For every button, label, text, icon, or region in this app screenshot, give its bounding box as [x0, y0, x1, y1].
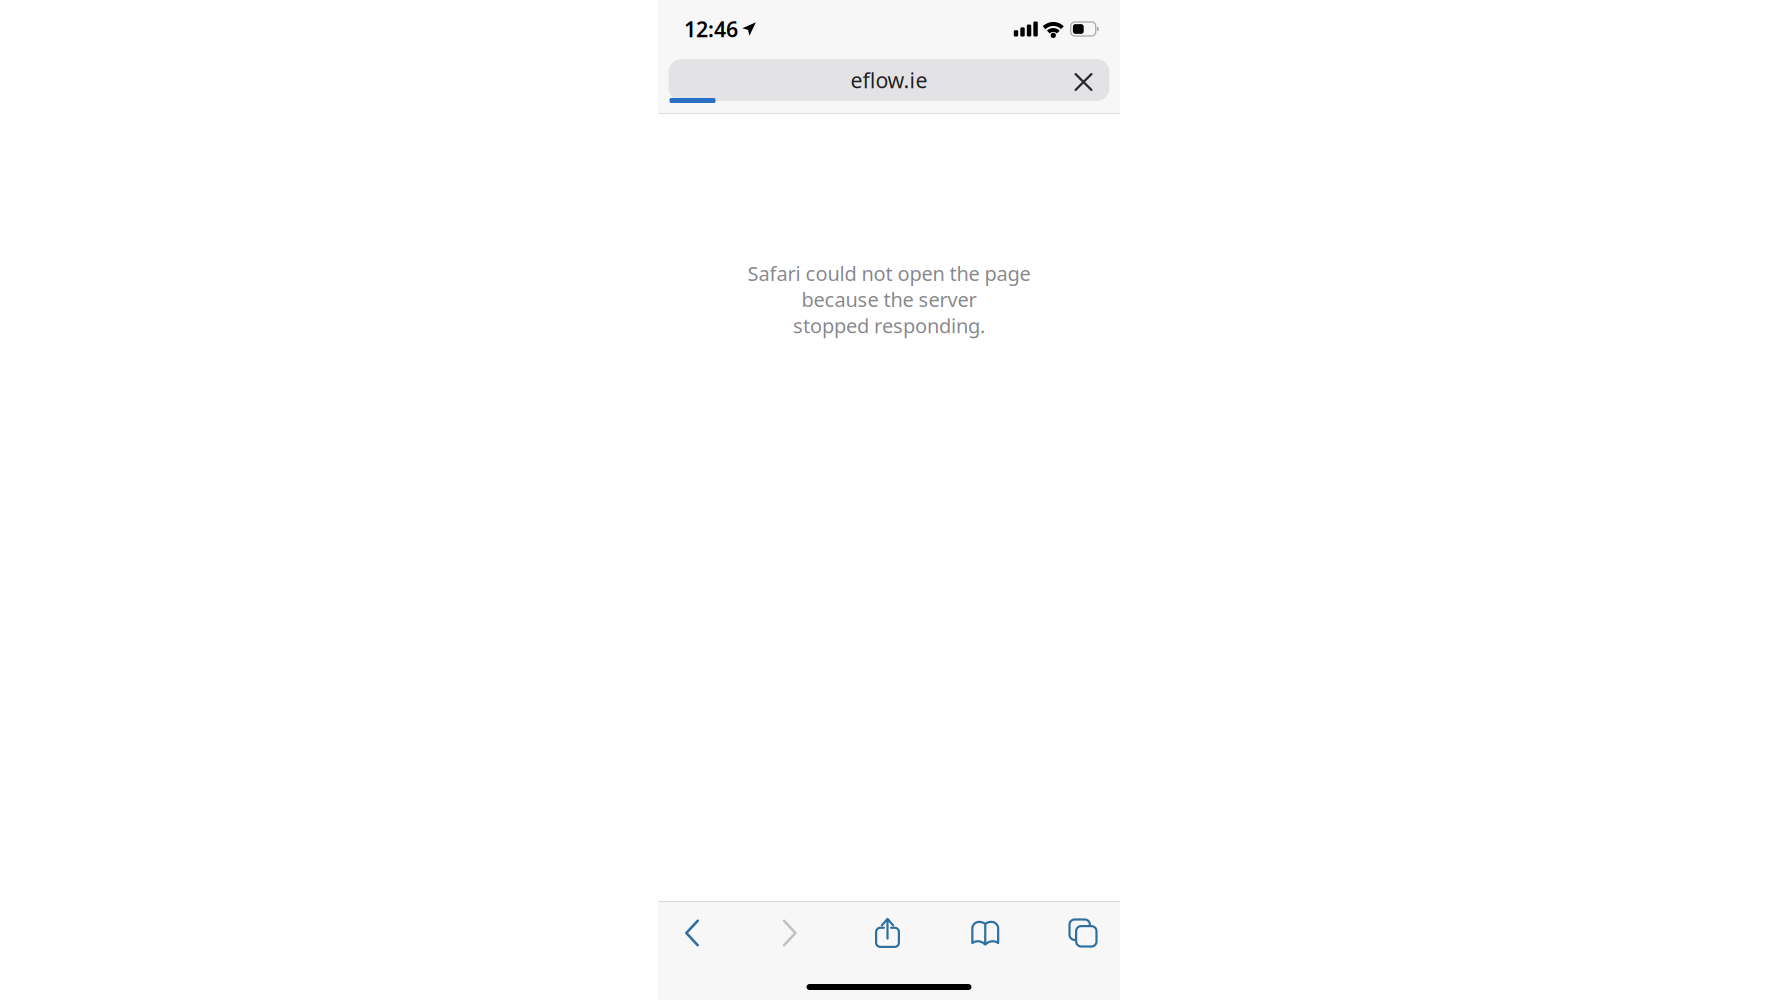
button[interactable]: Share	[860, 907, 914, 959]
button[interactable]: Forward	[763, 907, 817, 959]
staticText: because the server	[801, 286, 976, 313]
staticText: Safari could not open the page	[747, 260, 1030, 287]
staticText: stopped responding.	[793, 312, 985, 339]
button[interactable]: eflow.ie	[668, 59, 1109, 101]
button[interactable]: Tabs	[1056, 907, 1110, 959]
button[interactable]: Stop loading	[1065, 64, 1101, 100]
button[interactable]: Bookmarks	[958, 907, 1012, 959]
staticText: 12:46	[684, 15, 738, 43]
staticText: eflow.ie	[850, 66, 927, 94]
button[interactable]: Back	[665, 907, 719, 959]
